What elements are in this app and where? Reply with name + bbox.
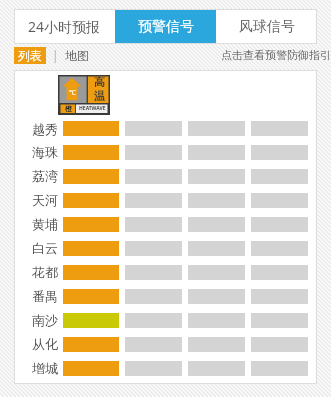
button[interactable]: 白云 bbox=[14, 236, 317, 260]
staticText: 温 bbox=[94, 89, 105, 103]
button[interactable]: 黄埔 bbox=[14, 212, 317, 236]
button[interactable]: 天河 bbox=[14, 188, 317, 212]
button[interactable]: 高温橙色预警信号 bbox=[58, 75, 110, 115]
staticText: 南沙 bbox=[32, 312, 58, 328]
button[interactable]: 列表 bbox=[14, 47, 46, 64]
staticText: 天河 bbox=[32, 192, 58, 208]
button[interactable]: 预警信号 bbox=[115, 9, 216, 44]
button[interactable]: 地图 bbox=[65, 48, 89, 63]
staticText: 24小时预报 bbox=[28, 17, 101, 36]
staticText: HEATWAVE bbox=[79, 105, 106, 112]
staticText: 海珠 bbox=[32, 144, 58, 160]
staticText: 高 bbox=[94, 75, 105, 89]
staticText: 荔湾 bbox=[32, 168, 58, 184]
staticText: 从化 bbox=[32, 336, 58, 352]
button[interactable]: 点击查看预警防御指引 bbox=[221, 48, 331, 62]
button[interactable]: 从化 bbox=[14, 332, 317, 356]
button[interactable]: 越秀 bbox=[14, 117, 317, 140]
button[interactable]: 南沙 bbox=[14, 308, 317, 332]
staticText: 黄埔 bbox=[32, 216, 58, 232]
button[interactable]: 海珠 bbox=[14, 140, 317, 164]
staticText: 越秀 bbox=[32, 121, 58, 137]
staticText: 风球信号 bbox=[239, 18, 295, 36]
staticText: 点击查看预警防御指引 bbox=[221, 48, 331, 62]
staticText: 地图 bbox=[65, 48, 89, 63]
staticText: 番禺 bbox=[32, 288, 58, 304]
staticText: 列表 bbox=[18, 48, 42, 63]
button[interactable]: 24小时预报 bbox=[14, 9, 115, 44]
staticText: | bbox=[52, 47, 59, 63]
staticText: 增城 bbox=[32, 360, 58, 376]
staticText: ℃ bbox=[69, 88, 76, 98]
staticText: 橙 bbox=[65, 104, 72, 113]
button[interactable]: 荔湾 bbox=[14, 164, 317, 188]
staticText: 白云 bbox=[32, 240, 58, 256]
button[interactable]: 增城 bbox=[14, 356, 317, 380]
button[interactable]: 番禺 bbox=[14, 284, 317, 308]
button[interactable]: 花都 bbox=[14, 260, 317, 284]
staticText: 花都 bbox=[32, 264, 58, 280]
staticText: 预警信号 bbox=[138, 18, 194, 36]
button[interactable]: 风球信号 bbox=[216, 9, 317, 44]
